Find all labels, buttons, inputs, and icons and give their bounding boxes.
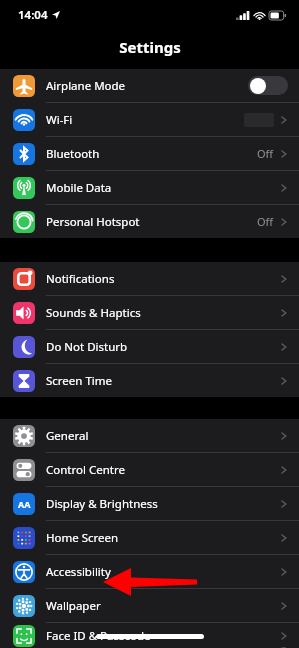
staticText: Bluetooth bbox=[46, 146, 100, 162]
staticText: Notifications bbox=[46, 271, 115, 287]
button[interactable]: Wallpaper bbox=[0, 589, 299, 623]
button[interactable]: Sounds & Haptics bbox=[0, 296, 299, 330]
staticText: Do Not Disturb bbox=[46, 339, 128, 355]
button[interactable]: Wi-Fi bbox=[0, 103, 299, 137]
staticText: Screen Time bbox=[46, 373, 113, 389]
button[interactable]: General bbox=[0, 419, 299, 453]
button[interactable]: Notifications bbox=[0, 262, 299, 296]
button[interactable]: Control Centre bbox=[0, 453, 299, 487]
staticText: Off bbox=[257, 146, 274, 161]
staticText: AA bbox=[18, 498, 31, 510]
staticText: Display & Brightness bbox=[46, 496, 158, 512]
button[interactable]: Airplane Mode bbox=[0, 69, 299, 103]
staticText: Home Screen bbox=[46, 530, 119, 546]
staticText: Settings bbox=[119, 37, 181, 57]
button[interactable]: Airplane Mode toggle bbox=[248, 76, 288, 95]
staticText: Accessibility bbox=[46, 564, 111, 580]
staticText: 14:04 bbox=[18, 7, 48, 23]
button[interactable]: Do Not Disturb bbox=[0, 330, 299, 364]
button[interactable]: Mobile Data bbox=[0, 171, 299, 205]
button[interactable]: AA bbox=[0, 487, 299, 521]
staticText: Mobile Data bbox=[46, 180, 112, 196]
button[interactable]: Home Screen bbox=[0, 521, 299, 555]
button[interactable]: Personal Hotspot bbox=[0, 205, 299, 238]
button[interactable]: Face ID & Passcode bbox=[0, 623, 299, 648]
staticText: Personal Hotspot bbox=[46, 214, 140, 230]
staticText: Off bbox=[257, 214, 274, 229]
staticText: Face ID & Passcode bbox=[46, 628, 151, 644]
staticText: Wi-Fi bbox=[46, 112, 73, 128]
button[interactable]: Screen Time bbox=[0, 364, 299, 397]
staticText: Sounds & Haptics bbox=[46, 305, 141, 321]
staticText: Airplane Mode bbox=[46, 78, 126, 94]
button[interactable]: Bluetooth bbox=[0, 137, 299, 171]
staticText: Wallpaper bbox=[46, 598, 101, 614]
staticText: Control Centre bbox=[46, 462, 125, 478]
button[interactable]: Accessibility bbox=[0, 555, 299, 589]
staticText: General bbox=[46, 428, 89, 444]
